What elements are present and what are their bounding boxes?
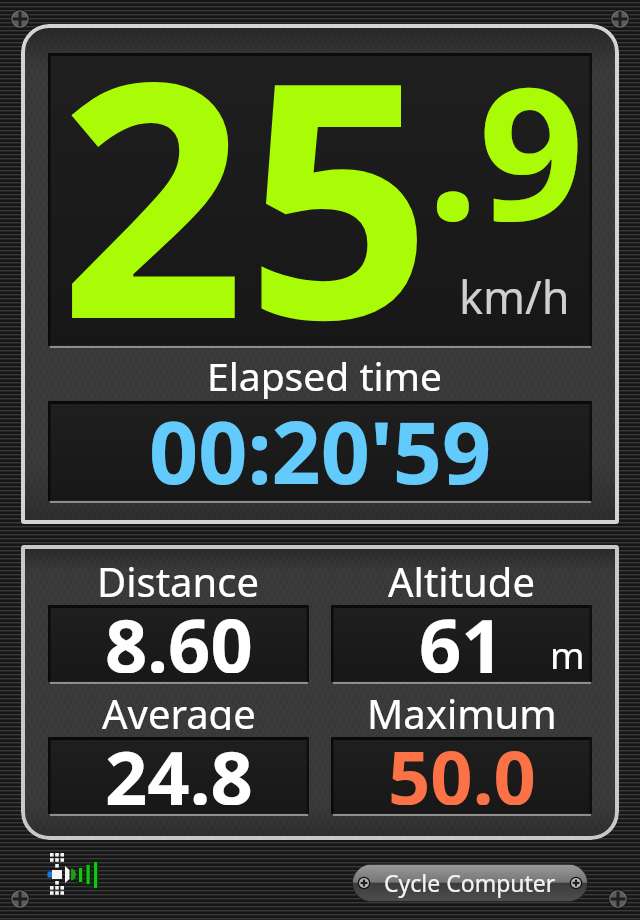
staticText: Average bbox=[102, 686, 256, 730]
button[interactable]: Distance bbox=[48, 553, 309, 684]
staticText: Cycle Computer bbox=[384, 867, 556, 898]
button[interactable]: Maximum bbox=[331, 685, 592, 816]
staticText: Altitude bbox=[388, 554, 535, 598]
staticText: Elapsed time bbox=[207, 349, 443, 399]
staticText: 25 bbox=[59, 24, 432, 414]
button[interactable]: Cycle Computer bbox=[352, 864, 588, 902]
staticText: 50.0 bbox=[388, 726, 536, 805]
button[interactable]: Altitude bbox=[331, 553, 592, 684]
staticText: 61 bbox=[419, 594, 504, 673]
staticText: 8.60 bbox=[105, 594, 253, 673]
button[interactable]: Average bbox=[48, 685, 309, 816]
staticText: 24.8 bbox=[105, 726, 253, 805]
button[interactable]: 25 bbox=[21, 24, 619, 524]
staticText: Distance bbox=[97, 554, 260, 598]
staticText: km/h bbox=[459, 266, 570, 327]
staticText: 00:20'59 bbox=[149, 392, 492, 494]
staticText: Maximum bbox=[367, 686, 557, 730]
button[interactable]: Distance bbox=[21, 545, 619, 840]
staticText: .9 bbox=[427, 24, 584, 274]
staticText: m bbox=[550, 629, 585, 679]
button[interactable]: GPS signal bbox=[44, 851, 102, 899]
